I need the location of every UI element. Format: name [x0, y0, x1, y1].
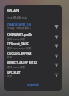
other: Wi-Fi signal strength	[54, 24, 59, 29]
staticText: CUCLUG-EFFY68	[7, 52, 32, 56]
other: Wi-Fi signal strength	[54, 34, 59, 39]
staticText: UPI-SUIT	[7, 71, 21, 75]
staticText: 通过 WPA2 加密	[7, 65, 26, 68]
button[interactable]: CUCLUG-EFFY68	[4, 50, 62, 60]
staticText: 通过 WPA2 加密	[7, 37, 26, 40]
button[interactable]: DIRECT-4E-HP M132	[4, 59, 62, 69]
staticText: 可用 WLAN 列表	[7, 16, 27, 20]
button[interactable]: TPGuest_9A3C	[4, 40, 62, 50]
staticText: CHINANET-pwZh	[7, 33, 33, 37]
staticText: ZHAOS-WIFI_5G	[7, 23, 31, 27]
button[interactable]: ZHAOS-WIFI_5G	[4, 21, 62, 31]
staticText: DIRECT-4E-HP M132	[7, 61, 38, 65]
other: Wi-Fi signal strength	[54, 43, 59, 48]
other: Wi-Fi signal strength	[54, 53, 59, 58]
other: Wi-Fi signal strength	[54, 72, 59, 77]
staticText: WLAN	[7, 8, 20, 14]
button[interactable]: UPI-SUIT	[4, 69, 62, 79]
staticText: 开放	[7, 75, 12, 78]
button[interactable]: 添加网络	[25, 82, 41, 88]
staticText: 已连接（网络质量好）	[7, 27, 32, 30]
other: Wi-Fi signal strength	[54, 62, 59, 67]
staticText: TPGuest_9A3C	[7, 42, 29, 46]
staticText: 开放	[7, 56, 12, 59]
staticText: 通过 WPA/WPA2 加密	[7, 46, 32, 49]
button[interactable]: CHINANET-pwZh	[4, 31, 62, 41]
